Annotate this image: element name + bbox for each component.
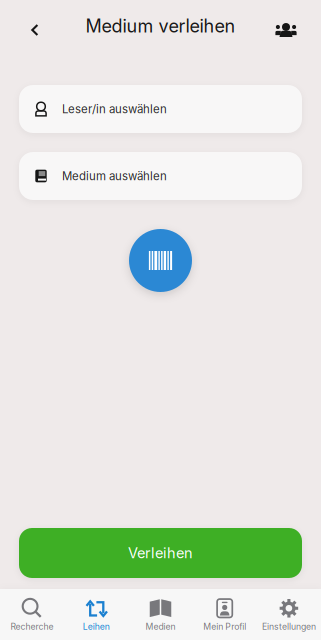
staticText: Einstellungen: [262, 621, 316, 632]
staticText: Leser/in auswählen: [62, 102, 167, 116]
staticText: Medium auswählen: [62, 169, 167, 183]
button[interactable]: Medium auswählen: [19, 152, 302, 200]
staticText: Medien: [145, 621, 175, 632]
button[interactable]: Leihen: [64, 589, 128, 640]
button[interactable]: Verleihen: [19, 528, 302, 578]
button[interactable]: Leser/in auswählen: [19, 85, 302, 133]
button[interactable]: Barcode scannen: [129, 229, 192, 292]
staticText: Mein Profil: [203, 621, 246, 632]
button[interactable]: Recherche: [0, 589, 64, 640]
button[interactable]: Ausleihende Personen: [268, 4, 304, 48]
button[interactable]: Zurück: [17, 4, 53, 48]
button[interactable]: Einstellungen: [257, 589, 321, 640]
button[interactable]: Medien: [128, 589, 193, 640]
staticText: Recherche: [11, 621, 54, 632]
staticText: Leihen: [83, 621, 110, 632]
staticText: Verleihen: [128, 544, 193, 562]
staticText: Medium verleihen: [85, 15, 235, 37]
button[interactable]: Mein Profil: [193, 589, 257, 640]
